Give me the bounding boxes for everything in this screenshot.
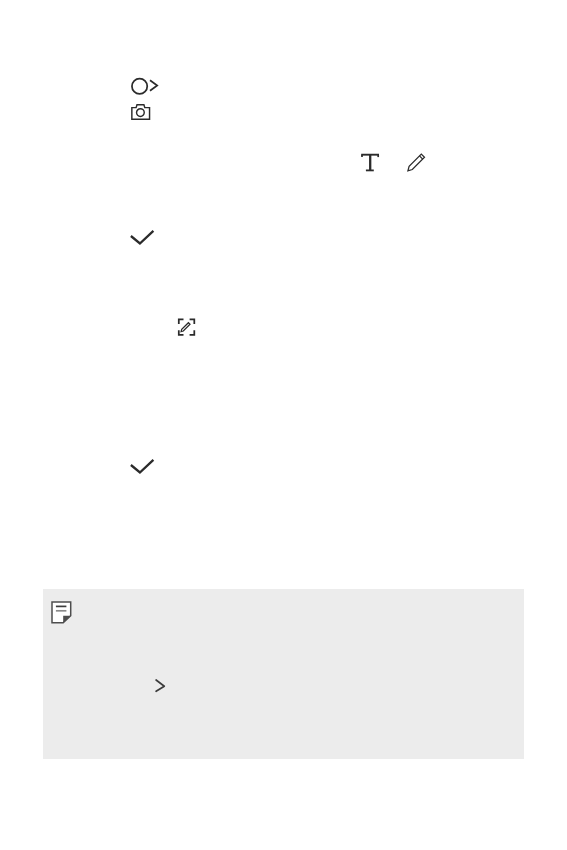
- button[interactable]: Note: [43, 589, 524, 759]
- button[interactable]: Edit image: [176, 316, 197, 338]
- button[interactable]: Formatting: [358, 150, 382, 174]
- button[interactable]: Selected: [128, 226, 156, 248]
- button[interactable]: Open note: [154, 677, 168, 695]
- button[interactable]: Open account: [128, 74, 162, 98]
- button[interactable]: Edit: [406, 151, 428, 173]
- button[interactable]: Change photo: [129, 102, 152, 122]
- button[interactable]: Selected: [128, 455, 156, 477]
